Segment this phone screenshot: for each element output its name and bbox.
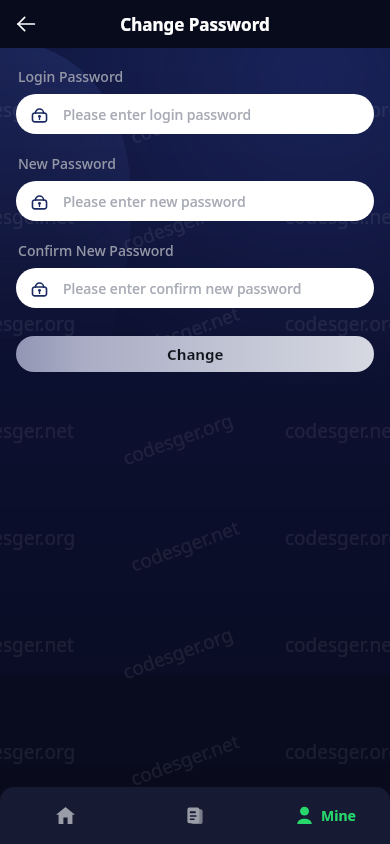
staticText: codesger.net <box>0 418 74 444</box>
staticText: codesger.net <box>0 204 74 230</box>
staticText: codesger.org <box>119 0 237 43</box>
button[interactable]: Orders <box>130 787 260 844</box>
staticText: codesger.net <box>127 728 243 792</box>
staticText: Confirm New Password <box>18 241 174 260</box>
staticText: codesger.net <box>127 514 243 578</box>
staticText: Mine <box>321 806 356 825</box>
staticText: codesger.org <box>119 621 237 685</box>
staticText: New Password <box>18 154 116 173</box>
staticText: codesger.org <box>285 311 390 337</box>
staticText: codesger.net <box>285 632 390 658</box>
staticText: codesger.org <box>285 525 390 551</box>
staticText: codesger.net <box>285 204 390 230</box>
staticText: codesger.net <box>127 86 243 150</box>
staticText: codesger.org <box>0 97 76 123</box>
button[interactable]: Please enter login password <box>16 94 374 134</box>
button[interactable]: Home <box>0 787 130 844</box>
staticText: codesger.org <box>0 311 76 337</box>
staticText: codesger.org <box>285 739 390 765</box>
button[interactable]: Mine <box>260 787 390 844</box>
staticText: codesger.net <box>0 632 74 658</box>
staticText: Change Password <box>120 13 270 36</box>
staticText: Please enter login password <box>63 105 252 124</box>
button[interactable]: Back <box>6 4 46 44</box>
staticText: Change <box>167 344 224 364</box>
staticText: Login Password <box>18 67 124 86</box>
staticText: codesger.org <box>119 193 237 257</box>
staticText: codesger.org <box>0 525 76 551</box>
staticText: codesger.org <box>119 407 237 471</box>
staticText: codesger.net <box>127 300 243 364</box>
button[interactable]: Change <box>16 336 374 372</box>
staticText: Please enter new password <box>63 192 246 211</box>
staticText: codesger.net <box>285 418 390 444</box>
staticText: codesger.org <box>0 739 76 765</box>
button[interactable]: Please enter confirm new password <box>16 268 374 308</box>
staticText: Please enter confirm new password <box>63 279 302 298</box>
staticText: codesger.org <box>285 97 390 123</box>
button[interactable]: Please enter new password <box>16 181 374 221</box>
